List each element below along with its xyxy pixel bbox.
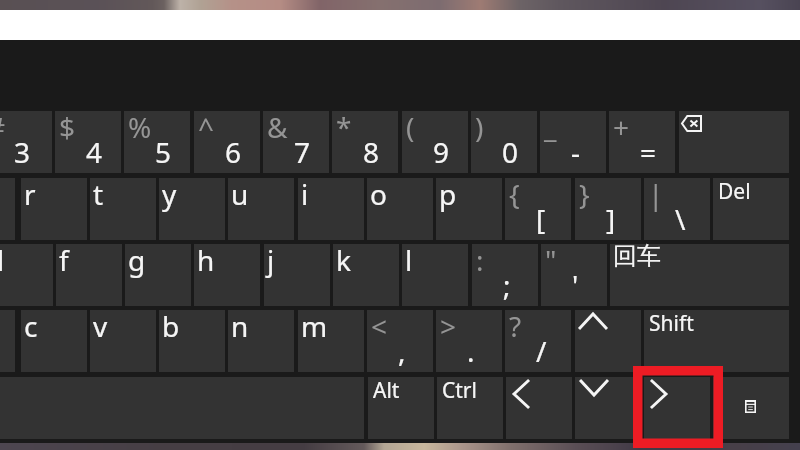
button[interactable]: { — [505, 178, 571, 240]
staticText: n — [231, 307, 249, 345]
staticText: # — [0, 108, 6, 146]
button[interactable]: h — [194, 244, 260, 306]
staticText: > — [440, 307, 457, 345]
button[interactable]: Alt — [368, 377, 434, 439]
staticText: + — [613, 108, 630, 146]
staticText: c — [24, 307, 38, 345]
button[interactable]: j — [264, 244, 330, 306]
staticText: . — [467, 332, 475, 370]
staticText: p — [439, 175, 457, 213]
button[interactable]: ) — [471, 111, 537, 173]
button[interactable]: + — [609, 111, 675, 173]
staticText: ^ — [198, 108, 215, 146]
button[interactable]: _ — [540, 111, 606, 173]
staticText: & — [267, 108, 288, 146]
staticText: i — [301, 175, 309, 213]
staticText: 3 — [14, 133, 31, 171]
staticText: b — [162, 307, 180, 345]
button[interactable]: > — [436, 310, 502, 372]
button[interactable]: c — [21, 310, 87, 372]
staticText: < — [371, 307, 388, 345]
button[interactable]: * — [332, 111, 398, 173]
staticText: = — [640, 133, 657, 171]
button[interactable]: Right — [644, 377, 710, 439]
staticText: 9 — [433, 133, 450, 171]
staticText: l — [405, 241, 413, 279]
button[interactable]: u — [228, 178, 294, 240]
staticText: ? — [509, 307, 522, 345]
button[interactable]: l — [402, 244, 468, 306]
staticText: y — [162, 175, 177, 213]
button[interactable]: Down — [575, 377, 641, 439]
staticText: } — [579, 175, 590, 213]
staticText: g — [128, 241, 146, 279]
button[interactable]: d — [0, 244, 53, 306]
button[interactable]: y — [159, 178, 225, 240]
button[interactable]: ? — [505, 310, 571, 372]
staticText: ( — [406, 108, 415, 146]
button[interactable]: ^ — [194, 111, 260, 173]
button[interactable]: & — [263, 111, 329, 173]
staticText: { — [509, 175, 520, 213]
button[interactable]: b — [159, 310, 225, 372]
staticText: ; — [503, 266, 511, 304]
staticText: 0 — [502, 133, 519, 171]
staticText: o — [370, 175, 387, 213]
button[interactable]: Shift — [644, 310, 789, 372]
button[interactable]: g — [125, 244, 191, 306]
button[interactable]: : — [472, 244, 538, 306]
button[interactable]: Del — [713, 178, 789, 240]
button[interactable]: v — [90, 310, 156, 372]
staticText: f — [59, 241, 69, 279]
staticText: 6 — [225, 133, 242, 171]
button[interactable]: i — [298, 178, 364, 240]
staticText: [ — [536, 200, 546, 238]
button[interactable]: % — [124, 111, 190, 173]
button[interactable]: o — [367, 178, 433, 240]
button[interactable]: p — [436, 178, 502, 240]
button[interactable]: Left — [506, 377, 572, 439]
button[interactable]: f — [56, 244, 122, 306]
button[interactable]: " — [541, 244, 607, 306]
staticText: t — [93, 175, 104, 213]
staticText: r — [24, 175, 36, 213]
staticText: _ — [544, 108, 557, 146]
staticText: * — [336, 108, 352, 146]
button[interactable]: Keyboard layout — [713, 377, 789, 439]
staticText: Shift — [649, 309, 694, 338]
button[interactable]: Ctrl — [437, 377, 503, 439]
button[interactable]: # — [0, 111, 52, 173]
staticText: ) — [475, 108, 484, 146]
button[interactable]: Up — [575, 310, 641, 372]
staticText: 4 — [86, 133, 103, 171]
button[interactable]: n — [228, 310, 294, 372]
staticText: / — [536, 332, 547, 370]
button[interactable]: ( — [402, 111, 468, 173]
button[interactable]: } — [575, 178, 641, 240]
staticText: | — [648, 175, 664, 213]
staticText: ' — [572, 266, 579, 304]
staticText: : — [476, 241, 484, 279]
staticText: d — [0, 241, 5, 279]
button[interactable]: r — [21, 178, 87, 240]
button[interactable]: t — [90, 178, 156, 240]
staticText: 5 — [155, 133, 172, 171]
button[interactable]: Backspace — [679, 111, 789, 173]
staticText: \ — [675, 200, 686, 238]
button[interactable]: | — [644, 178, 710, 240]
staticText: 7 — [294, 133, 311, 171]
button[interactable]: < — [367, 310, 433, 372]
button[interactable]: 回车 — [610, 244, 789, 306]
staticText: " — [545, 241, 557, 279]
staticText: m — [301, 307, 328, 345]
staticText: ] — [606, 200, 616, 238]
staticText: Alt — [373, 376, 400, 405]
staticText: 回车 — [613, 241, 661, 271]
staticText: 8 — [363, 133, 380, 171]
button[interactable]: m — [298, 310, 364, 372]
button[interactable]: k — [333, 244, 399, 306]
button[interactable]: $ — [55, 111, 121, 173]
